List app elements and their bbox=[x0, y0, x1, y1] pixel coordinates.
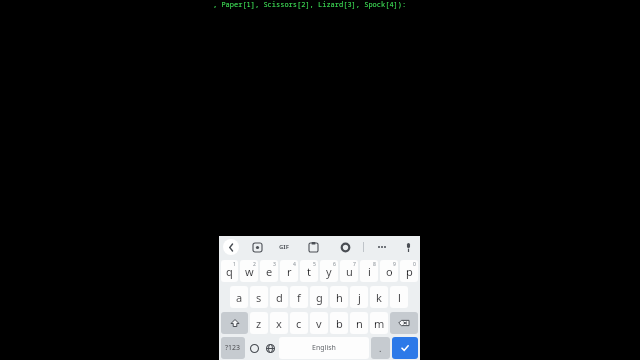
staticText: j bbox=[358, 290, 361, 305]
button[interactable]: f bbox=[290, 286, 308, 308]
button[interactable]: s bbox=[250, 286, 268, 308]
staticText: z bbox=[256, 316, 262, 331]
button[interactable]: w bbox=[240, 260, 258, 282]
button[interactable]: More options bbox=[374, 239, 390, 255]
staticText: o bbox=[386, 264, 393, 279]
staticText: n bbox=[356, 316, 363, 331]
staticText: g bbox=[316, 290, 323, 305]
button[interactable]: Settings bbox=[337, 239, 353, 255]
staticText: English bbox=[312, 343, 336, 353]
button[interactable]: Emoji bbox=[246, 337, 262, 359]
staticText: y bbox=[326, 264, 332, 279]
button[interactable]: l bbox=[390, 286, 408, 308]
button[interactable]: o bbox=[380, 260, 398, 282]
staticText: s bbox=[256, 290, 262, 305]
button[interactable]: d bbox=[270, 286, 288, 308]
staticText: u bbox=[346, 264, 353, 279]
button[interactable]: ?123 bbox=[221, 337, 245, 359]
staticText: , Paper[1], Scissors[2], Lizard[3], Spoc… bbox=[213, 0, 407, 10]
staticText: 6 bbox=[333, 261, 336, 268]
staticText: 5 bbox=[313, 261, 316, 268]
button[interactable]: h bbox=[330, 286, 348, 308]
staticText: 3 bbox=[273, 261, 276, 268]
button[interactable]: z bbox=[250, 312, 268, 334]
staticText: b bbox=[336, 316, 343, 331]
button[interactable]: p bbox=[400, 260, 418, 282]
staticText: w bbox=[245, 264, 254, 279]
staticText: 9 bbox=[393, 261, 396, 268]
button[interactable]: b bbox=[330, 312, 348, 334]
staticText: 1 bbox=[233, 261, 236, 268]
staticText: h bbox=[336, 290, 343, 305]
button[interactable]: y bbox=[320, 260, 338, 282]
staticText: i bbox=[368, 264, 371, 279]
button[interactable]: Enter bbox=[392, 337, 418, 359]
button[interactable]: GIF bbox=[279, 239, 289, 255]
staticText: 0 bbox=[413, 261, 416, 268]
button[interactable]: u bbox=[340, 260, 358, 282]
button[interactable]: n bbox=[350, 312, 368, 334]
button[interactable]: v bbox=[310, 312, 328, 334]
button[interactable]: a bbox=[230, 286, 248, 308]
button[interactable]: g bbox=[310, 286, 328, 308]
staticText: r bbox=[287, 264, 292, 279]
staticText: m bbox=[374, 316, 385, 331]
staticText: 8 bbox=[373, 261, 376, 268]
staticText: GIF bbox=[279, 243, 289, 251]
staticText: a bbox=[236, 290, 243, 305]
button[interactable]: Shift bbox=[221, 312, 248, 334]
staticText: 2 bbox=[253, 261, 256, 268]
button[interactable]: Clipboard bbox=[305, 239, 321, 255]
button[interactable]: English bbox=[279, 337, 369, 359]
button[interactable]: . bbox=[371, 337, 390, 359]
staticText: d bbox=[276, 290, 283, 305]
button[interactable]: m bbox=[370, 312, 388, 334]
staticText: . bbox=[379, 342, 382, 354]
button[interactable]: Stickers bbox=[249, 239, 265, 255]
button[interactable]: j bbox=[350, 286, 368, 308]
button[interactable]: e bbox=[260, 260, 278, 282]
staticText: c bbox=[296, 316, 302, 331]
button[interactable]: r bbox=[280, 260, 298, 282]
staticText: p bbox=[406, 264, 413, 279]
button[interactable]: q bbox=[221, 260, 238, 282]
button[interactable]: c bbox=[290, 312, 308, 334]
button[interactable]: k bbox=[370, 286, 388, 308]
button[interactable]: x bbox=[270, 312, 288, 334]
button[interactable]: t bbox=[300, 260, 318, 282]
staticText: t bbox=[307, 264, 311, 279]
staticText: l bbox=[398, 290, 401, 305]
staticText: ?123 bbox=[225, 343, 241, 353]
staticText: f bbox=[297, 290, 301, 305]
staticText: x bbox=[276, 316, 282, 331]
button[interactable]: Back bbox=[223, 239, 239, 255]
staticText: 7 bbox=[353, 261, 356, 268]
button[interactable]: Backspace bbox=[390, 312, 418, 334]
staticText: 4 bbox=[293, 261, 296, 268]
button[interactable]: Change language bbox=[262, 337, 278, 359]
staticText: q bbox=[226, 264, 233, 279]
staticText: k bbox=[376, 290, 382, 305]
button[interactable]: Voice input bbox=[400, 239, 416, 255]
button[interactable]: i bbox=[360, 260, 378, 282]
staticText: e bbox=[266, 264, 273, 279]
staticText: v bbox=[316, 316, 322, 331]
